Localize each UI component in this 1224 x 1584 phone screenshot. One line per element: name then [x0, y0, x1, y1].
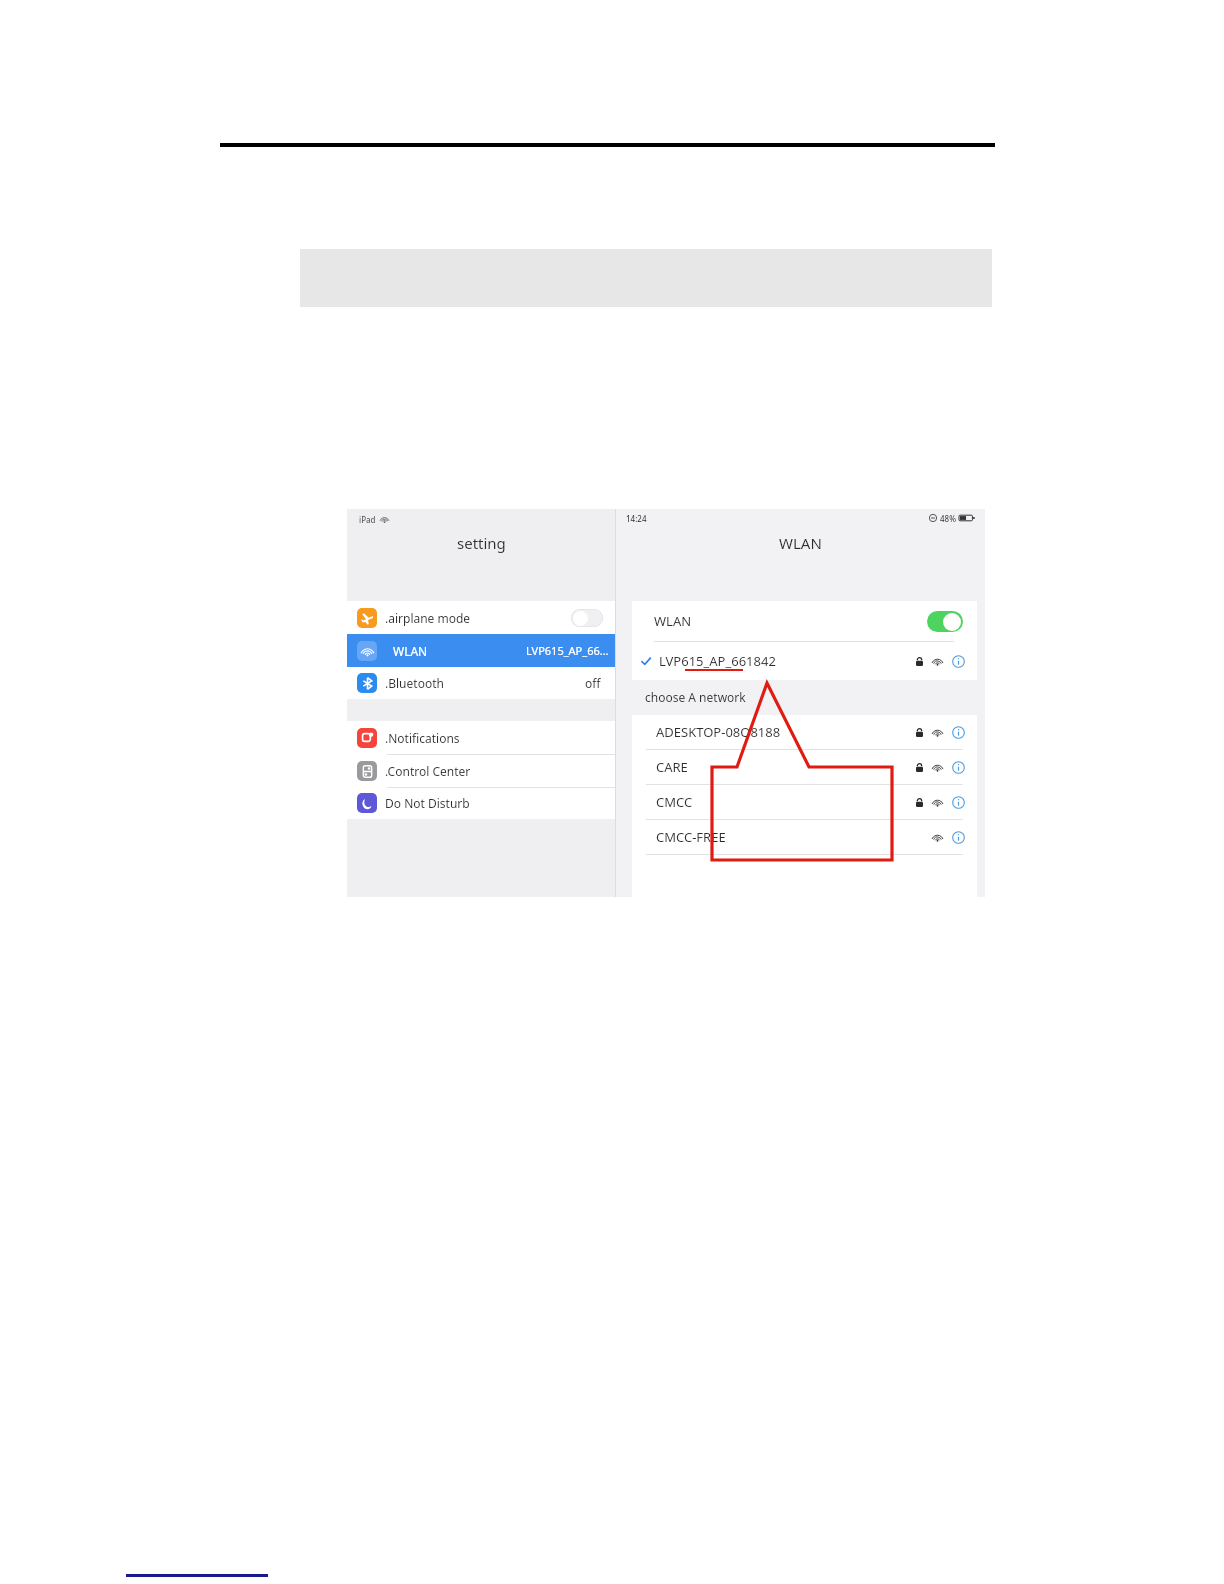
staticText: 14:24: [626, 513, 647, 524]
staticText: 48%: [940, 513, 956, 524]
button[interactable]: Do Not Disturb: [347, 787, 615, 819]
staticText: off: [585, 675, 601, 691]
button[interactable]: WLAN: [347, 634, 615, 667]
button[interactable]: Network info: [952, 831, 965, 844]
button[interactable]: .Bluetooth: [347, 667, 615, 699]
button[interactable]: Network info: [952, 726, 965, 739]
button[interactable]: CMCC-FREE: [632, 820, 977, 854]
button[interactable]: [632, 855, 977, 889]
staticText: WLAN: [654, 612, 692, 630]
button[interactable]: LVP615_AP_661842: [632, 642, 977, 680]
button[interactable]: WLAN: [632, 601, 977, 641]
staticText: CMCC-FREE: [656, 828, 726, 846]
button[interactable]: .airplane mode: [347, 601, 615, 634]
staticText: iPad: [359, 514, 376, 525]
staticText: setting: [457, 533, 506, 553]
staticText: Do Not Disturb: [385, 795, 470, 811]
button[interactable]: ADESKTOP-08Q8188: [632, 715, 977, 749]
staticText: .Notifications: [385, 730, 460, 746]
button[interactable]: Airplane mode toggle: [571, 609, 603, 627]
staticText: ADESKTOP-08Q8188: [656, 723, 781, 741]
button[interactable]: .Notifications: [347, 721, 615, 754]
button[interactable]: CARE: [632, 750, 977, 784]
staticText: LVP615_AP_661842: [659, 652, 776, 670]
button[interactable]: CMCC: [632, 785, 977, 819]
staticText: .Bluetooth: [385, 675, 444, 691]
staticText: .Control Center: [385, 763, 471, 779]
button[interactable]: Network info: [952, 655, 965, 668]
staticText: WLAN: [779, 533, 822, 553]
staticText: LVP615_AP_66...: [526, 643, 609, 658]
button[interactable]: Network info: [952, 761, 965, 774]
staticText: CARE: [656, 758, 688, 776]
button[interactable]: WLAN toggle: [927, 611, 963, 632]
button[interactable]: .Control Center: [347, 754, 615, 787]
button[interactable]: Network info: [952, 796, 965, 809]
staticText: CMCC: [656, 793, 693, 811]
staticText: choose A network: [645, 689, 746, 705]
staticText: WLAN: [393, 643, 428, 659]
staticText: .airplane mode: [385, 610, 471, 626]
